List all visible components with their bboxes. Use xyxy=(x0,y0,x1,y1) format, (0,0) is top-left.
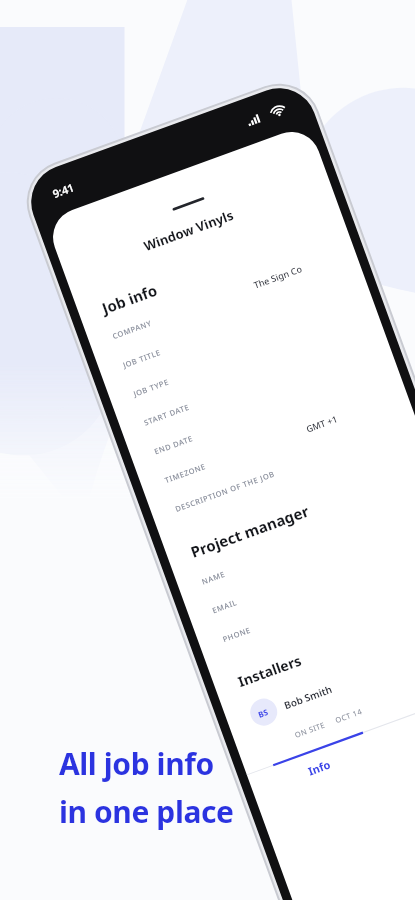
button[interactable]: Installer Bob Smith xyxy=(330,670,390,710)
button[interactable]: All job info in one place xyxy=(55,738,285,830)
button[interactable]: Info tab xyxy=(300,755,370,789)
button[interactable]: All job info in one place xyxy=(0,0,415,900)
